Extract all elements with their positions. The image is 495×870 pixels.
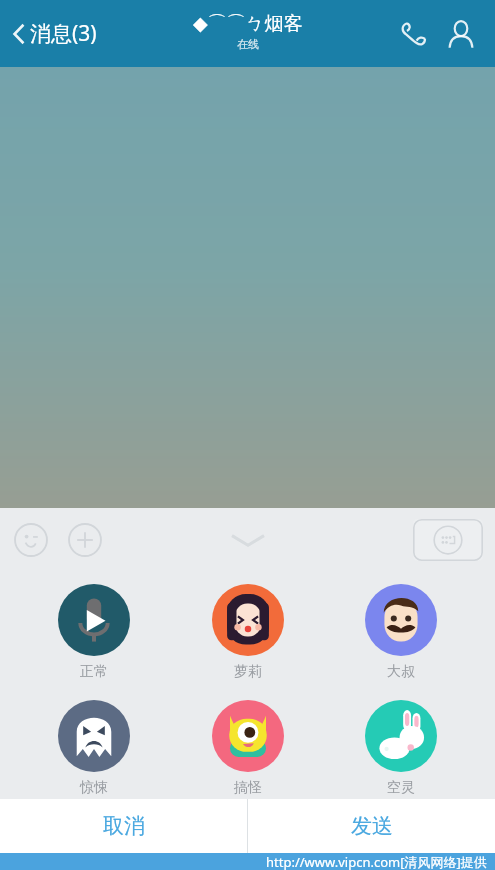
staticText: 正常	[80, 663, 108, 681]
button[interactable]: 萝莉	[188, 582, 308, 683]
button[interactable]: 搞怪	[188, 698, 308, 799]
staticText: 搞怪	[234, 779, 262, 797]
button[interactable]: Add attachment	[62, 517, 108, 563]
button[interactable]: 消息(3)	[0, 0, 111, 67]
staticText: 发送	[351, 813, 393, 839]
staticText: ◆⌒⌒ㄅ烟客	[193, 12, 303, 36]
staticText: 惊悚	[80, 779, 108, 797]
staticText: 萝莉	[234, 663, 262, 681]
staticText: 消息(3)	[30, 19, 97, 48]
button[interactable]: Keyboard	[413, 519, 483, 561]
button[interactable]: Collapse panel	[220, 520, 276, 560]
button[interactable]: 惊悚	[34, 698, 154, 799]
staticText: 在线	[237, 37, 259, 51]
button[interactable]: 发送	[248, 799, 495, 853]
button[interactable]: Emoji	[8, 517, 54, 563]
button[interactable]: Contact profile	[437, 10, 485, 58]
staticText: 取消	[103, 813, 145, 839]
button[interactable]: 大叔	[341, 582, 461, 683]
button[interactable]: Call	[389, 10, 437, 58]
staticText: http://www.vipcn.com[清风网络]提供	[266, 853, 487, 870]
button[interactable]: 空灵	[341, 698, 461, 799]
staticText: 大叔	[387, 663, 415, 681]
button[interactable]: 取消	[0, 799, 247, 853]
button[interactable]: 正常	[34, 582, 154, 683]
staticText: 空灵	[387, 779, 415, 797]
